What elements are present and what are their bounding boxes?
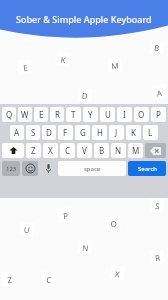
staticText: D (81, 90, 89, 101)
staticText: M (110, 60, 120, 71)
staticText: U (23, 224, 31, 235)
staticText: I (123, 109, 126, 120)
button[interactable]: Search (128, 161, 166, 176)
button[interactable]: Z (26, 143, 41, 158)
staticText: O (109, 217, 118, 229)
staticText: space (84, 165, 101, 173)
staticText: J (115, 127, 118, 138)
button[interactable]: Q (2, 107, 16, 122)
button[interactable]: I (117, 107, 132, 122)
staticText: T (71, 109, 76, 120)
button[interactable]: W (18, 107, 32, 122)
staticText: S (154, 200, 161, 211)
staticText: P (156, 109, 161, 120)
staticText: C (45, 274, 53, 285)
staticText: Y (88, 109, 93, 120)
button[interactable]: S (26, 125, 40, 140)
button[interactable]: P (151, 107, 166, 122)
staticText: S (31, 127, 36, 138)
button[interactable]: Backspace (145, 143, 166, 158)
staticText: X (48, 145, 53, 156)
staticText: B (153, 42, 161, 53)
button[interactable]: G (75, 125, 90, 140)
staticText: M (132, 145, 140, 156)
button[interactable]: C (60, 143, 75, 158)
staticText: Q (6, 109, 13, 120)
staticText: C (65, 145, 71, 156)
button[interactable]: K (126, 125, 141, 140)
staticText: H (97, 127, 103, 138)
button[interactable]: Voice input (40, 161, 56, 176)
button[interactable]: Emoji (22, 161, 38, 176)
staticText: N (81, 242, 89, 253)
staticText: L (148, 127, 153, 138)
button[interactable]: E (34, 107, 48, 122)
button[interactable]: T (66, 107, 81, 122)
button[interactable]: U (100, 107, 115, 122)
staticText: K (131, 127, 136, 138)
staticText: N (115, 145, 122, 156)
staticText: R (55, 109, 60, 120)
staticText: D (46, 127, 52, 138)
staticText: O (138, 109, 145, 120)
staticText: A (155, 87, 163, 98)
staticText: Search (138, 165, 157, 173)
button[interactable]: V (77, 143, 92, 158)
button[interactable]: O (134, 107, 149, 122)
staticText: A (14, 127, 20, 138)
button[interactable]: R (50, 107, 64, 122)
button[interactable]: H (92, 125, 107, 140)
staticText: Z (31, 145, 36, 156)
staticText: F (63, 127, 68, 138)
staticText: E (39, 109, 44, 120)
button[interactable]: J (109, 125, 124, 140)
staticText: Z (6, 274, 13, 285)
button[interactable]: 123 (2, 161, 20, 176)
staticText: P (62, 210, 69, 221)
staticText: R (154, 252, 161, 263)
button[interactable]: A (10, 125, 24, 140)
staticText: W (21, 109, 29, 120)
button[interactable]: X (43, 143, 58, 158)
staticText: E (22, 62, 29, 73)
button[interactable]: Y (83, 107, 98, 122)
staticText: X (114, 268, 121, 279)
staticText: G (80, 127, 86, 138)
button[interactable]: space (58, 161, 126, 176)
button[interactable]: L (143, 125, 158, 140)
staticText: B (99, 145, 105, 156)
button[interactable]: Shift (2, 143, 24, 158)
button[interactable]: D (42, 125, 56, 140)
button[interactable]: F (58, 125, 73, 140)
button[interactable]: N (111, 143, 126, 158)
staticText: K (60, 54, 67, 65)
button[interactable]: B (94, 143, 109, 158)
staticText: Sober & Simple Apple Keyboard (16, 13, 152, 25)
staticText: V (82, 145, 87, 156)
staticText: 123 (6, 165, 17, 173)
staticText: U (105, 109, 111, 120)
button[interactable]: M (128, 143, 143, 158)
